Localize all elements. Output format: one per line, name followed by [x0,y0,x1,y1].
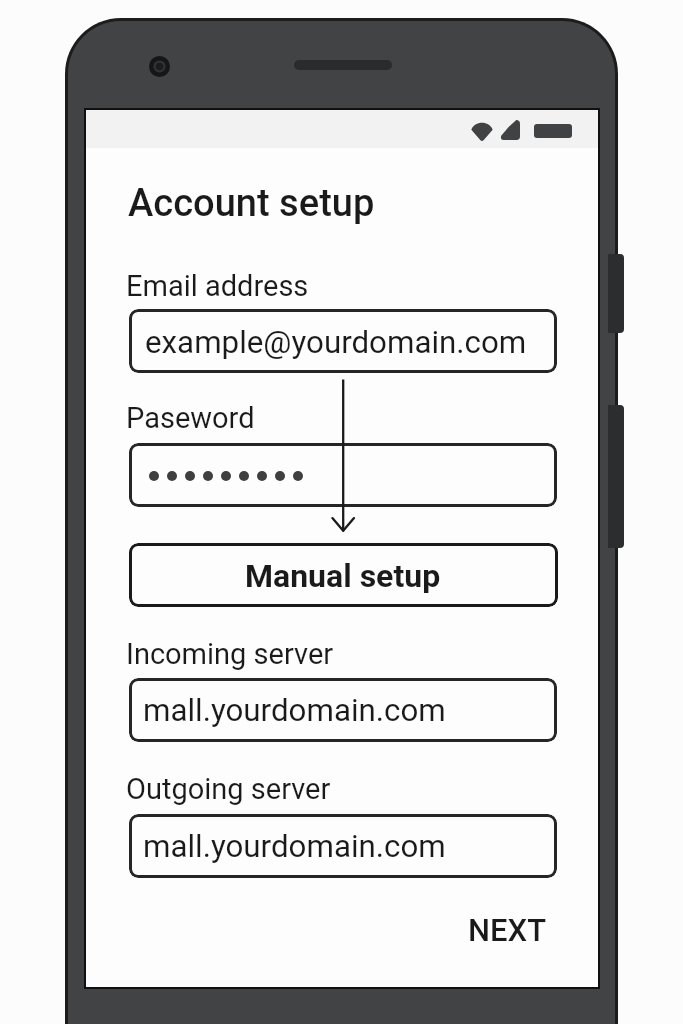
other: Wi-Fi signal [471,120,493,141]
button[interactable] [129,443,557,507]
other: Mobile signal [500,120,520,140]
button[interactable]: mall.yourdomain.com [129,678,557,742]
button[interactable]: mall.yourdomain.com [129,814,557,878]
staticText: Incoming server [126,637,334,671]
staticText: NEXT [468,912,546,948]
staticText: Email address [126,269,309,303]
staticText: Outgoing server [126,772,331,806]
other: Battery [534,124,572,138]
staticText: mall.yourdomain.com [143,692,446,729]
staticText: Paseword [126,401,255,435]
staticText: mall.yourdomain.com [143,828,446,865]
staticText: Manual setup [245,557,441,595]
button[interactable]: Manual setup [129,543,558,607]
button[interactable]: NEXT [455,898,559,954]
button[interactable]: example@yourdomain.com [129,309,557,373]
staticText: example@yourdomain.com [145,324,527,361]
staticText: Account setup [128,181,375,226]
